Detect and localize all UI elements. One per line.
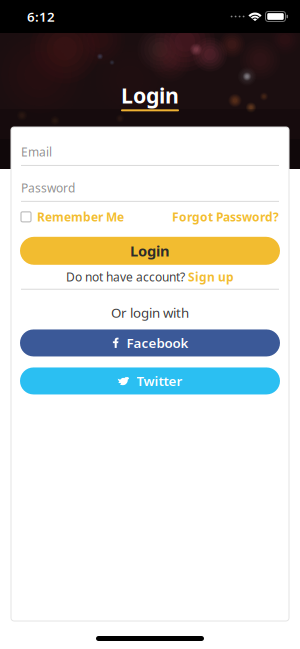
staticText: Facebook xyxy=(126,334,188,352)
button[interactable]: Sign up xyxy=(188,269,234,285)
button[interactable]: Remember Me xyxy=(21,209,124,225)
button[interactable]: Twitter xyxy=(20,367,280,394)
button[interactable]: Password xyxy=(21,180,279,202)
staticText: Twitter xyxy=(136,372,182,390)
staticText: Do not have account? xyxy=(66,269,185,285)
button[interactable]: Facebook xyxy=(20,329,280,356)
staticText: Email xyxy=(21,144,52,160)
staticText: Login xyxy=(121,81,179,109)
button[interactable]: Forgot Password? xyxy=(172,209,279,225)
staticText: 6:12 xyxy=(27,8,55,25)
staticText: Or login with xyxy=(111,304,189,321)
staticText: Sign up xyxy=(188,269,234,285)
staticText: Login xyxy=(130,241,170,261)
staticText: Password xyxy=(21,180,75,196)
button[interactable]: Email xyxy=(21,144,279,166)
button[interactable]: Login xyxy=(20,237,280,265)
staticText: Remember Me xyxy=(37,209,124,225)
staticText: Forgot Password? xyxy=(172,209,279,225)
